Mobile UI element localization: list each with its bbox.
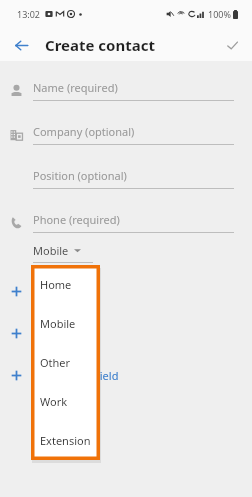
- staticText: Name (required): [33, 80, 118, 95]
- button[interactable]: Phone (required): [0, 207, 252, 237]
- staticText: Create contact: [45, 35, 155, 55]
- staticText: Home: [40, 277, 72, 292]
- button[interactable]: Name (required): [0, 75, 252, 105]
- staticText: 100%: [208, 8, 231, 20]
- button[interactable]: Save contact: [218, 31, 246, 59]
- staticText: Work: [40, 394, 68, 409]
- button[interactable]: Extension: [31, 421, 100, 460]
- button[interactable]: Work: [31, 382, 100, 421]
- staticText: Position (optional): [33, 168, 127, 183]
- button[interactable]: Other: [31, 343, 100, 382]
- button[interactable]: Add field: [0, 323, 33, 343]
- staticText: Mobile: [33, 243, 69, 258]
- staticText: Other: [40, 355, 71, 370]
- button[interactable]: Mobile: [33, 243, 93, 263]
- staticText: Phone (required): [33, 212, 120, 227]
- staticText: Mobile: [40, 316, 76, 331]
- button[interactable]: Add field: [0, 365, 33, 385]
- staticText: Extension: [40, 433, 91, 448]
- button[interactable]: Add field: [0, 281, 33, 301]
- staticText: Company (optional): [33, 124, 135, 139]
- button[interactable]: Home: [31, 265, 100, 304]
- button[interactable]: Mobile: [31, 304, 100, 343]
- button[interactable]: field: [96, 368, 119, 383]
- button[interactable]: Company (optional): [0, 119, 252, 149]
- staticText: 13:02: [17, 8, 41, 20]
- button[interactable]: Position (optional): [0, 163, 252, 193]
- button[interactable]: Back: [7, 31, 35, 59]
